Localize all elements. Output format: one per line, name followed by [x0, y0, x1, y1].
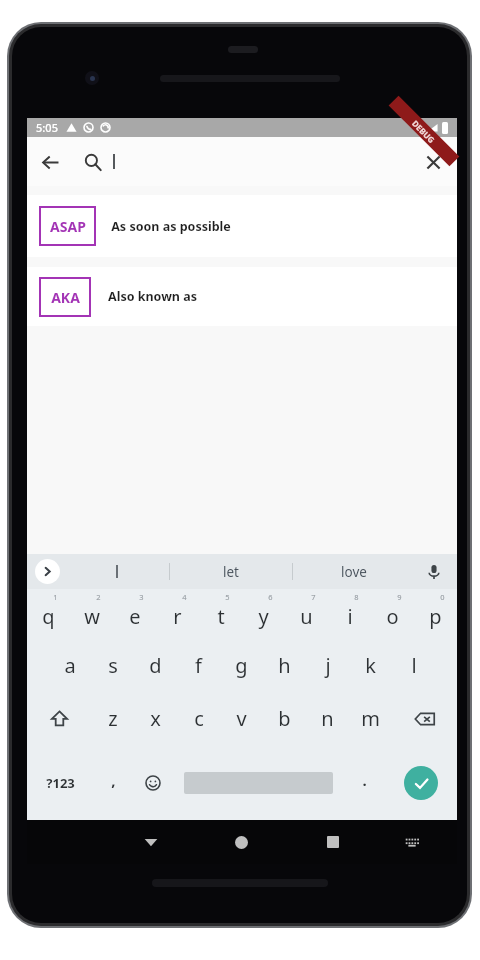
- staticText: s: [108, 652, 118, 679]
- button[interactable]: f: [177, 639, 220, 692]
- staticText: k: [365, 652, 376, 679]
- staticText: z: [108, 705, 118, 732]
- staticText: 5:05: [36, 120, 58, 135]
- staticText: d: [149, 652, 162, 679]
- button[interactable]: ,: [94, 745, 132, 820]
- staticText: a: [64, 652, 76, 679]
- button[interactable]: Emoji: [132, 745, 174, 820]
- staticText: u: [300, 603, 313, 630]
- button[interactable]: c: [177, 692, 220, 745]
- staticText: o: [386, 603, 399, 630]
- staticText: DEBUG: [410, 118, 437, 145]
- staticText: x: [150, 705, 161, 732]
- button[interactable]: let: [170, 554, 292, 589]
- button[interactable]: Shift: [27, 692, 91, 745]
- button[interactable]: .: [343, 745, 385, 820]
- staticText: let: [223, 563, 239, 581]
- staticText: ASAP: [50, 217, 86, 236]
- staticText: 5: [225, 592, 230, 602]
- staticText: 6: [268, 592, 273, 602]
- staticText: AKA: [51, 288, 80, 307]
- button[interactable]: 1: [27, 589, 70, 639]
- button[interactable]: m: [349, 692, 392, 745]
- staticText: l: [411, 652, 417, 679]
- staticText: m: [361, 705, 380, 732]
- button[interactable]: [65, 554, 169, 589]
- staticText: ?123: [46, 774, 75, 792]
- staticText: 8: [354, 592, 359, 602]
- staticText: 2: [96, 592, 101, 602]
- staticText: 0: [440, 592, 445, 602]
- button[interactable]: Enter: [385, 745, 457, 820]
- button[interactable]: Clear search: [409, 138, 457, 186]
- staticText: c: [194, 705, 204, 732]
- staticText: 3: [139, 592, 144, 602]
- button[interactable]: k: [349, 639, 392, 692]
- button[interactable]: l: [392, 639, 435, 692]
- staticText: g: [235, 652, 248, 679]
- button[interactable]: Back: [105, 820, 196, 864]
- staticText: q: [42, 603, 55, 630]
- button[interactable]: Switch keyboard: [378, 820, 446, 864]
- staticText: w: [84, 603, 100, 630]
- button[interactable]: 3: [113, 589, 156, 639]
- staticText: 1: [53, 592, 58, 602]
- staticText: i: [347, 603, 353, 630]
- button[interactable]: Home: [196, 820, 287, 864]
- staticText: r: [173, 603, 182, 630]
- button[interactable]: More suggestions: [35, 559, 60, 584]
- staticText: As soon as possible: [111, 218, 231, 235]
- button[interactable]: 8: [328, 589, 371, 639]
- button[interactable]: 9: [371, 589, 414, 639]
- button[interactable]: 4: [156, 589, 199, 639]
- staticText: Also known as: [108, 288, 197, 305]
- button[interactable]: 5: [199, 589, 242, 639]
- staticText: h: [278, 652, 291, 679]
- button[interactable]: g: [220, 639, 263, 692]
- button[interactable]: [174, 745, 343, 820]
- staticText: p: [429, 603, 442, 630]
- button[interactable]: b: [263, 692, 306, 745]
- staticText: v: [236, 705, 247, 732]
- button[interactable]: Back: [27, 139, 73, 185]
- staticText: y: [258, 603, 269, 630]
- staticText: j: [325, 652, 331, 679]
- button[interactable]: 6: [242, 589, 285, 639]
- staticText: f: [195, 652, 202, 679]
- button[interactable]: ASAP: [27, 195, 457, 257]
- button[interactable]: ?123: [27, 745, 94, 820]
- button[interactable]: love: [293, 554, 415, 589]
- button[interactable]: x: [134, 692, 177, 745]
- button[interactable]: 7: [285, 589, 328, 639]
- button[interactable]: n: [306, 692, 349, 745]
- staticText: b: [278, 705, 291, 732]
- staticText: love: [341, 563, 367, 581]
- staticText: 9: [397, 592, 402, 602]
- staticText: n: [321, 705, 334, 732]
- button[interactable]: z: [91, 692, 134, 745]
- button[interactable]: j: [306, 639, 349, 692]
- button[interactable]: h: [263, 639, 306, 692]
- staticText: t: [217, 603, 225, 630]
- button[interactable]: v: [220, 692, 263, 745]
- staticText: 4: [182, 592, 187, 602]
- staticText: 7: [311, 592, 316, 602]
- button[interactable]: 0: [414, 589, 457, 639]
- button[interactable]: a: [48, 639, 91, 692]
- button[interactable]: Recent apps: [287, 820, 378, 864]
- button[interactable]: AKA: [27, 267, 457, 326]
- button[interactable]: 2: [70, 589, 113, 639]
- staticText: ,: [111, 770, 116, 790]
- staticText: e: [129, 603, 141, 630]
- button[interactable]: Search: [73, 142, 113, 182]
- button[interactable]: Voice input: [415, 554, 453, 589]
- button[interactable]: Backspace: [392, 692, 457, 745]
- button[interactable]: s: [91, 639, 134, 692]
- button[interactable]: d: [134, 639, 177, 692]
- staticText: .: [362, 770, 367, 790]
